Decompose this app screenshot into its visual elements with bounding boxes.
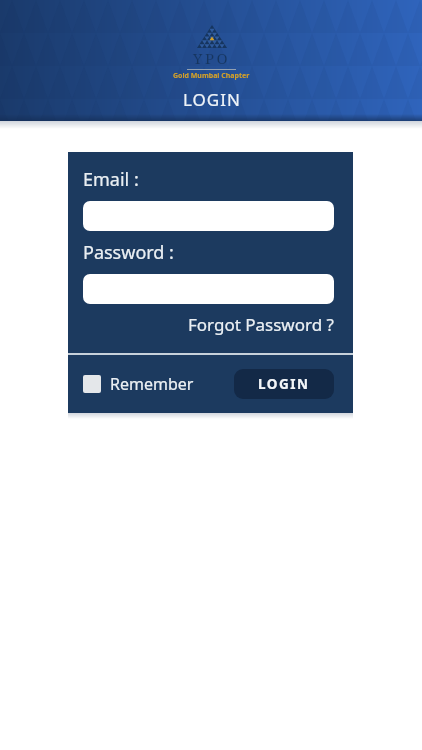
staticText: LOGIN xyxy=(258,375,310,393)
staticText: Gold Mumbai Chapter xyxy=(173,71,250,81)
staticText: Remember xyxy=(110,373,194,395)
button[interactable]: Remember xyxy=(83,373,194,395)
staticText: Email : xyxy=(83,167,139,192)
button[interactable]: Forgot Password ? xyxy=(188,313,334,336)
staticText: YPO xyxy=(193,48,231,68)
staticText: Password : xyxy=(83,240,174,265)
button[interactable] xyxy=(83,201,334,231)
staticText: LOGIN xyxy=(183,88,241,111)
button[interactable]: LOGIN xyxy=(234,369,334,399)
button[interactable] xyxy=(83,274,334,304)
